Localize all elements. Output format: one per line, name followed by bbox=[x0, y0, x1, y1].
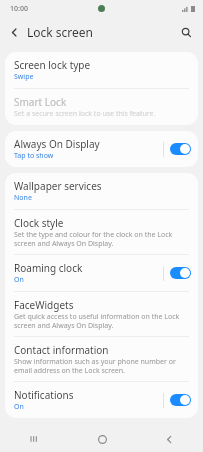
staticText: Tap to show bbox=[14, 151, 54, 161]
staticText: Contact information bbox=[14, 343, 109, 357]
staticText: Wallpaper services bbox=[14, 179, 102, 193]
staticText: Set the type and colour for the clock on… bbox=[14, 230, 191, 248]
staticText: On bbox=[14, 275, 24, 285]
staticText: Notifications bbox=[14, 388, 74, 402]
button[interactable]: Search bbox=[174, 20, 198, 44]
staticText: Screen lock type bbox=[14, 58, 91, 72]
staticText: On bbox=[14, 402, 24, 412]
button[interactable]: Wallpaper services bbox=[5, 173, 198, 209]
button[interactable]: Toggle Notifications bbox=[170, 394, 191, 406]
button[interactable]: Smart Lock bbox=[5, 89, 198, 125]
button[interactable]: Toggle Roaming clock bbox=[170, 267, 191, 279]
button[interactable]: Clock style bbox=[5, 210, 198, 254]
staticText: Swipe bbox=[14, 72, 34, 82]
staticText: Set a secure screen lock to use this fea… bbox=[14, 109, 156, 119]
button[interactable]: Always On Display bbox=[5, 131, 198, 167]
button[interactable]: Home bbox=[89, 426, 115, 452]
staticText: Always On Display bbox=[14, 137, 100, 151]
button[interactable]: Toggle Always On Display bbox=[170, 143, 191, 155]
button[interactable]: Screen lock type bbox=[5, 52, 198, 88]
staticText: Roaming clock bbox=[14, 261, 83, 275]
staticText: 10:00 bbox=[10, 4, 28, 14]
button[interactable]: Contact information bbox=[5, 337, 198, 381]
button[interactable]: Back bbox=[156, 426, 182, 452]
button[interactable]: FaceWidgets bbox=[5, 292, 198, 336]
button[interactable]: Back bbox=[2, 20, 26, 44]
button[interactable]: Notifications bbox=[5, 382, 198, 418]
staticText: Get quick access to useful information o… bbox=[14, 312, 191, 330]
staticText: None bbox=[14, 193, 32, 203]
button[interactable]: Roaming clock bbox=[5, 255, 198, 291]
staticText: Show information such as your phone numb… bbox=[14, 357, 191, 375]
staticText: Lock screen bbox=[27, 24, 94, 40]
staticText: Clock style bbox=[14, 216, 64, 230]
staticText: Smart Lock bbox=[14, 95, 67, 109]
button[interactable]: Recent apps bbox=[21, 426, 47, 452]
staticText: FaceWidgets bbox=[14, 298, 74, 312]
